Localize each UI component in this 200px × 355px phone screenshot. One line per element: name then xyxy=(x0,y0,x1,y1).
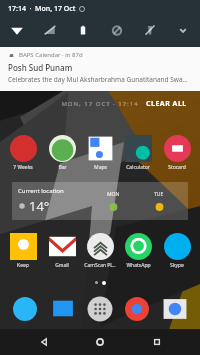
button[interactable]: Wi-Fi xyxy=(6,19,28,41)
button[interactable]: Current location xyxy=(12,182,188,220)
button[interactable]: BAPS Calendar · in 87d xyxy=(0,47,200,91)
button[interactable]: Flashlight xyxy=(139,19,161,41)
button[interactable]: Messages xyxy=(47,293,79,325)
staticText: Maps xyxy=(94,164,107,171)
staticText: Keep xyxy=(17,262,29,269)
button[interactable]: Skype xyxy=(158,232,196,270)
button[interactable]: Home xyxy=(87,329,113,355)
staticText: Posh Sud Punam xyxy=(8,62,73,73)
button[interactable]: Recents xyxy=(144,329,170,355)
staticText: Calculator xyxy=(126,164,150,171)
button[interactable]: Camera xyxy=(159,293,191,325)
staticText: MON xyxy=(107,191,120,198)
staticText: BAPS Calendar · in 87d xyxy=(19,51,83,59)
staticText: Gmail xyxy=(55,262,69,269)
button[interactable]: Bar xyxy=(43,134,81,172)
staticText: TUE xyxy=(154,191,164,198)
button[interactable]: Keep xyxy=(4,232,42,270)
staticText: MON, 17 OCT · 17:14 xyxy=(0,100,200,108)
button[interactable]: CamScan PL.. xyxy=(81,232,119,270)
staticText: 14° xyxy=(29,197,50,215)
staticText: Skype xyxy=(170,262,184,269)
button[interactable]: Calculator xyxy=(119,134,157,172)
button[interactable]: Maps xyxy=(81,134,119,172)
button[interactable]: CLEAR ALL xyxy=(143,96,190,112)
button[interactable]: Phone xyxy=(9,293,41,325)
button[interactable]: WhatsApp xyxy=(119,232,157,270)
button[interactable]: Mobile data off xyxy=(39,19,61,41)
staticText: CamScan PL.. xyxy=(84,262,116,269)
staticText: Celebrates the day Mul Aksharbrahma Guna… xyxy=(8,75,192,84)
staticText: 17:14 · Mon, 17 Oct xyxy=(8,4,76,14)
staticText: Stocard xyxy=(168,164,186,171)
button[interactable]: Apps xyxy=(84,293,116,325)
staticText: CLEAR ALL xyxy=(146,99,187,109)
button[interactable]: Chrome xyxy=(121,293,153,325)
button[interactable]: Do not disturb xyxy=(106,19,128,41)
staticText: 7 Weeks xyxy=(13,164,33,171)
staticText: Current location xyxy=(18,187,64,195)
button[interactable]: Gmail xyxy=(43,232,81,270)
staticText: WhatsApp xyxy=(126,262,151,269)
button[interactable]: 7 Weeks xyxy=(4,134,42,172)
button[interactable]: Stocard xyxy=(158,134,196,172)
button[interactable]: Battery xyxy=(72,19,94,41)
button[interactable]: Back xyxy=(31,329,57,355)
button[interactable]: Expand xyxy=(172,19,194,41)
staticText: Bar xyxy=(58,164,67,171)
